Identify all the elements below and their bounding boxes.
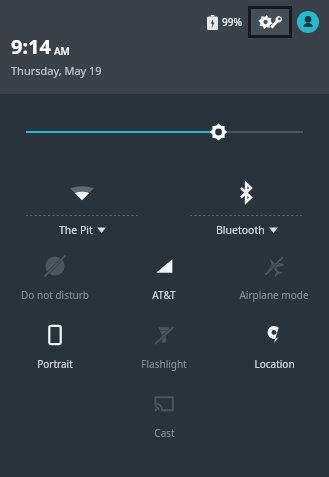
button[interactable] — [0, 94, 329, 170]
staticText: 99% — [222, 15, 242, 29]
button[interactable]: User — [297, 11, 319, 33]
staticText: AT&T — [152, 288, 176, 302]
button[interactable]: Flashlight — [109, 320, 219, 373]
button[interactable]: AT&T — [109, 251, 219, 304]
staticText: Do not disturb — [21, 288, 89, 302]
staticText: Location — [254, 357, 295, 371]
staticText: The Pit — [59, 223, 93, 237]
button[interactable]: Do not disturb — [0, 251, 109, 304]
staticText: Flashlight — [141, 357, 187, 371]
staticText: AM — [54, 44, 70, 58]
button[interactable]: Settings — [251, 9, 289, 35]
staticText: Portrait — [37, 357, 73, 371]
button[interactable]: Location — [219, 320, 329, 373]
button[interactable]: Airplane mode — [219, 251, 329, 304]
staticText: Thursday, May 19 — [11, 63, 102, 78]
staticText: Bluetooth — [216, 223, 265, 237]
staticText: 9:14 — [11, 33, 51, 60]
button[interactable]: Cast — [109, 389, 219, 442]
button[interactable]: The Pit — [0, 178, 164, 237]
staticText: Cast — [154, 426, 175, 440]
staticText: Airplane mode — [239, 288, 309, 302]
button[interactable]: Bluetooth — [164, 178, 329, 237]
button[interactable]: Portrait — [0, 320, 109, 373]
